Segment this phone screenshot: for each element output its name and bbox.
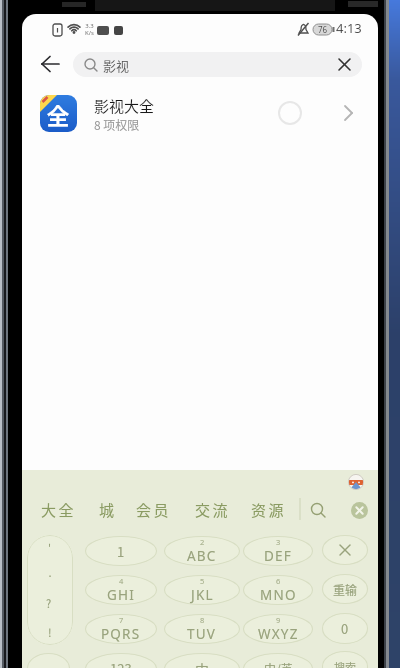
button[interactable]: ': [27, 535, 73, 645]
staticText: 2: [200, 537, 205, 547]
button[interactable]: [332, 52, 357, 77]
staticText: 重输: [333, 581, 358, 598]
staticText: 中/英: [264, 660, 293, 668]
staticText: 0: [341, 619, 349, 638]
button[interactable]: 6: [243, 575, 313, 605]
staticText: 资源: [251, 499, 287, 521]
button[interactable]: 中/英: [243, 653, 313, 668]
staticText: ABC: [187, 547, 217, 565]
staticText: ·: [47, 567, 54, 583]
staticText: 城: [99, 499, 117, 521]
button[interactable]: [27, 653, 70, 668]
staticText: 1: [117, 542, 125, 561]
staticText: 3: [276, 537, 281, 547]
staticText: 会员: [136, 499, 172, 521]
button[interactable]: 123: [85, 653, 157, 668]
staticText: 全: [47, 98, 70, 130]
button[interactable]: 8: [164, 614, 240, 644]
staticText: 3.3 K/s: [85, 22, 94, 37]
button[interactable]: 1: [85, 536, 157, 566]
button[interactable]: [351, 502, 368, 519]
staticText: 4: [119, 576, 124, 586]
staticText: 中: [195, 659, 209, 668]
staticText: 123: [110, 659, 132, 668]
staticText: GHI: [107, 586, 136, 604]
button[interactable]: 资源: [251, 499, 287, 521]
button[interactable]: 中: [164, 653, 240, 668]
staticText: 交流: [195, 499, 231, 521]
staticText: 8 项权限: [94, 116, 140, 133]
staticText: 6: [276, 576, 281, 586]
staticText: !: [48, 624, 52, 640]
staticText: 76: [318, 24, 328, 35]
button[interactable]: 大全: [41, 499, 77, 521]
button[interactable]: 3: [243, 536, 313, 566]
button[interactable]: 4: [85, 575, 157, 605]
button[interactable]: 5: [164, 575, 240, 605]
staticText: ?: [46, 595, 52, 611]
staticText: 大全: [41, 499, 77, 521]
button[interactable]: 全: [22, 88, 378, 140]
button[interactable]: 搜索: [322, 651, 368, 668]
button[interactable]: 交流: [195, 499, 231, 521]
button[interactable]: 城: [99, 499, 117, 521]
staticText: 4:13: [336, 19, 362, 37]
staticText: 搜索: [334, 659, 356, 668]
staticText: 8: [200, 615, 205, 625]
button[interactable]: 7: [85, 614, 157, 644]
button[interactable]: 重输: [322, 574, 368, 604]
staticText: PQRS: [101, 625, 141, 643]
button[interactable]: 0: [322, 613, 368, 644]
staticText: 影视大全: [94, 95, 155, 117]
staticText: ': [48, 539, 52, 555]
staticText: DEF: [264, 547, 292, 565]
staticText: 5: [200, 576, 205, 586]
staticText: 影视: [103, 56, 130, 75]
button[interactable]: 影视: [73, 52, 362, 77]
button[interactable]: [306, 497, 330, 521]
button[interactable]: 2: [164, 536, 240, 566]
staticText: WXYZ: [258, 625, 299, 643]
staticText: JKL: [191, 586, 214, 604]
button[interactable]: [322, 535, 368, 565]
staticText: TUV: [187, 625, 217, 643]
staticText: MNO: [260, 586, 297, 604]
button[interactable]: [36, 50, 64, 78]
staticText: 7: [119, 615, 124, 625]
button[interactable]: 9: [243, 614, 313, 644]
button[interactable]: 会员: [136, 499, 172, 521]
staticText: 9: [276, 615, 281, 625]
